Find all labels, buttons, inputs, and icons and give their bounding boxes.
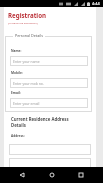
staticText: Current Residence Address Details (11, 116, 71, 129)
button[interactable]: Back (15, 168, 29, 182)
button[interactable]: Enter your email (10, 98, 88, 108)
button[interactable]: Home (45, 168, 59, 182)
button[interactable]: Enter your mob no. (10, 78, 88, 88)
staticText: 4:44 (92, 1, 100, 6)
staticText: Address: (11, 134, 25, 138)
button[interactable] (9, 158, 91, 169)
staticText: Name: (11, 49, 22, 53)
button[interactable]: Enter your name (10, 56, 88, 66)
staticText: Enter your mob no. (13, 81, 44, 86)
button[interactable] (9, 144, 91, 155)
button[interactable]: Recent apps (74, 168, 88, 182)
staticText: Enter your email (13, 101, 40, 106)
staticText: Email: (11, 91, 21, 95)
staticText: [All fields are mandatory] (8, 21, 38, 24)
staticText: Personal Details (15, 33, 43, 38)
staticText: Registration (8, 11, 47, 19)
staticText: Mobile: (11, 71, 23, 75)
staticText: Enter your name (13, 59, 40, 64)
